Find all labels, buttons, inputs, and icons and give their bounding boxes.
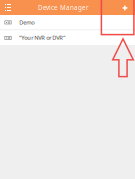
button[interactable]: Add device [118, 0, 135, 15]
button[interactable]: Demo [0, 15, 135, 30]
staticText: Device Manager [38, 3, 89, 12]
staticText: Demo [19, 18, 34, 26]
staticText: “Your NVR or DVR” [19, 34, 65, 41]
button[interactable]: Menu [0, 0, 17, 15]
button[interactable]: “Your NVR or DVR” [0, 30, 135, 45]
